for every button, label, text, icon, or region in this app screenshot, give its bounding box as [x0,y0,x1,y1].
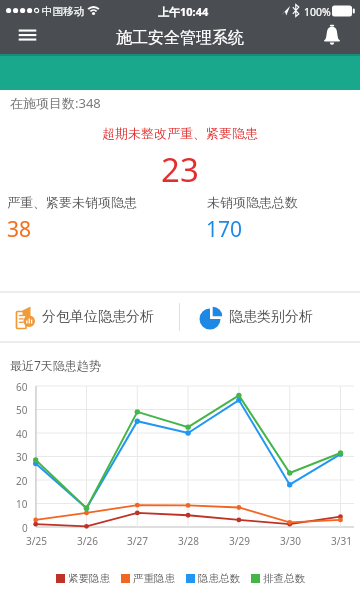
staticText: 60 [16,380,28,394]
staticText: 严重隐患 [133,572,175,585]
staticText: 最近7天隐患趋势 [10,357,101,373]
staticText: 3/28 [178,534,199,548]
staticText: 分包单位隐患分析 [42,308,154,326]
staticText: 严重、紧要未销项隐患 [7,194,137,210]
staticText: 未销项隐患总数 [207,194,298,210]
staticText: 3/27 [127,534,148,548]
staticText: 10 [16,497,28,511]
button[interactable] [0,22,52,54]
staticText: 3/29 [229,534,250,548]
staticText: 3/31 [331,534,352,548]
staticText: 23 [161,147,199,192]
staticText: 在施项目数:348 [10,94,101,112]
button[interactable]: 分包单位隐患分析 [0,293,179,341]
staticText: 50 [16,403,28,417]
staticText: 超期未整改严重、紧要隐患 [102,125,258,141]
staticText: 40 [16,427,28,441]
staticText: 3/30 [280,534,301,548]
staticText: 100% [304,5,331,19]
staticText: 隐患总数 [198,572,240,585]
staticText: 中国移动 [42,5,84,18]
button[interactable]: 隐患类别分析 [180,293,360,341]
staticText: 排查总数 [263,572,305,585]
staticText: 隐患类别分析 [229,308,313,326]
staticText: 0 [22,521,28,535]
staticText: 上午10:44 [158,4,209,19]
staticText: 3/26 [77,534,98,548]
staticText: 施工安全管理系统 [116,28,244,48]
staticText: 170 [206,215,243,244]
staticText: 20 [16,474,28,488]
staticText: 紧要隐患 [68,572,110,585]
staticText: 30 [16,450,28,464]
button[interactable] [312,22,360,54]
staticText: 38 [7,215,32,244]
staticText: 3/25 [26,534,47,548]
